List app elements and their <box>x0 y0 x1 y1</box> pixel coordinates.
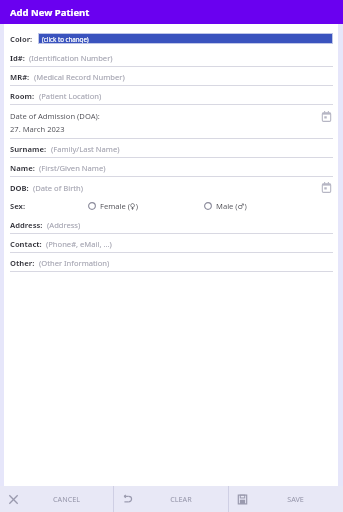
staticText: Id#: <box>10 53 25 63</box>
staticText: (Family/Last Name) <box>51 144 120 154</box>
button[interactable]: Date of Admission (DOA): <box>4 105 338 139</box>
staticText: (Date of Birth) <box>33 183 84 193</box>
button[interactable]: Surname: <box>4 139 338 158</box>
staticText: Male (♂) <box>216 201 247 211</box>
staticText: 27. March 2023 <box>10 124 65 134</box>
staticText: Sex: <box>10 201 26 211</box>
staticText: (Phone#, eMail, ...) <box>46 239 112 249</box>
button[interactable]: Pick date of birth <box>320 181 333 194</box>
staticText: CANCEL <box>53 494 80 504</box>
staticText: Add New Patient <box>10 6 90 19</box>
staticText: CLEAR <box>170 494 192 504</box>
staticText: Surname: <box>10 144 47 154</box>
staticText: Other: <box>10 258 35 268</box>
button[interactable]: Id#: <box>4 48 338 67</box>
button[interactable]: Pick admission date <box>320 110 333 123</box>
button[interactable]: Color: <box>4 29 338 48</box>
button[interactable]: Address: <box>4 215 338 234</box>
button[interactable]: Female (♀) <box>88 199 138 213</box>
staticText: SAVE <box>287 494 304 504</box>
staticText: Female (♀) <box>100 201 138 211</box>
button[interactable]: Room: <box>4 86 338 105</box>
staticText: (Other Information) <box>39 258 110 268</box>
staticText: DOB: <box>10 183 29 193</box>
staticText: (Address) <box>47 220 81 230</box>
button[interactable]: CANCEL <box>0 486 113 512</box>
button[interactable]: SAVE <box>229 486 343 512</box>
staticText: Name: <box>10 163 35 173</box>
staticText: MR#: <box>10 72 30 82</box>
button[interactable]: DOB: <box>4 177 338 196</box>
staticText: (First/Given Name) <box>39 163 106 173</box>
staticText: Room: <box>10 91 35 101</box>
staticText: Contact: <box>10 239 42 249</box>
staticText: (click to change) <box>42 35 89 43</box>
staticText: (Patient Location) <box>39 91 102 101</box>
button[interactable]: CLEAR <box>114 486 228 512</box>
staticText: Color: <box>10 34 33 44</box>
button[interactable]: Contact: <box>4 234 338 253</box>
button[interactable]: MR#: <box>4 67 338 86</box>
button[interactable]: Name: <box>4 158 338 177</box>
button[interactable]: Other: <box>4 253 338 272</box>
staticText: Address: <box>10 220 43 230</box>
button[interactable]: Male (♂) <box>204 199 247 213</box>
staticText: (Identification Number) <box>29 53 113 63</box>
staticText: Date of Admission (DOA): <box>10 111 100 121</box>
staticText: (Medical Record Number) <box>34 72 125 82</box>
